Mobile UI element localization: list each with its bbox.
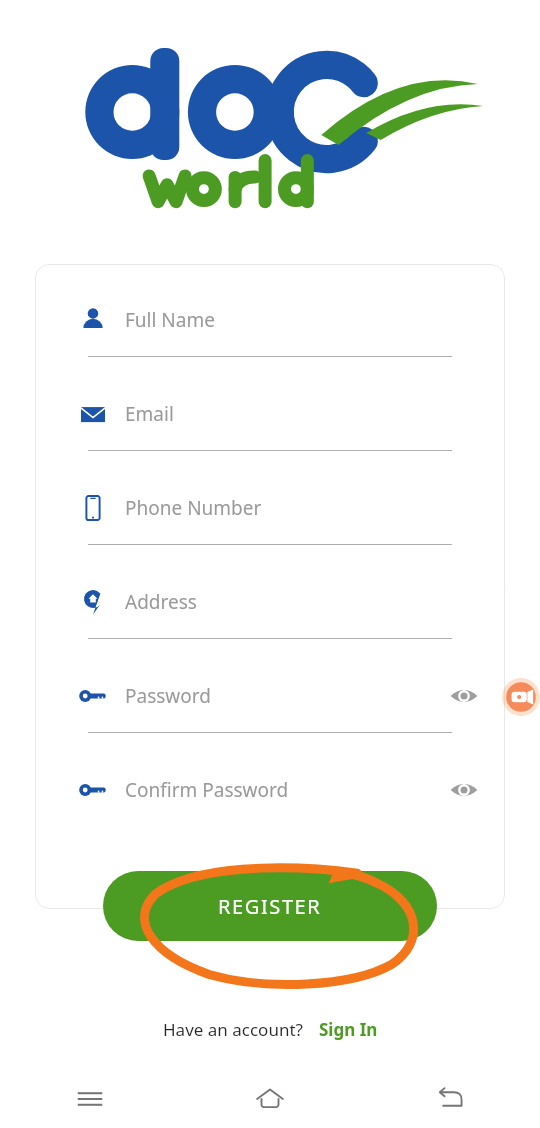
button[interactable]: Sign In xyxy=(319,1018,378,1041)
button[interactable]: Phone Number xyxy=(35,488,505,528)
staticText: REGISTER xyxy=(218,893,322,920)
staticText: Phone Number xyxy=(125,495,262,521)
button[interactable]: Confirm Password xyxy=(35,770,505,810)
staticText: Email xyxy=(125,401,174,427)
staticText: Address xyxy=(125,589,197,615)
button[interactable]: Full Name xyxy=(35,300,505,340)
button[interactable]: Recent apps xyxy=(58,1074,122,1124)
button[interactable]: REGISTER xyxy=(103,871,437,941)
button[interactable]: Password xyxy=(35,676,505,716)
staticText: Have an account? xyxy=(163,1018,303,1041)
button[interactable]: Video call xyxy=(502,669,540,725)
button[interactable]: Show password xyxy=(443,770,485,810)
staticText: Confirm Password xyxy=(125,777,289,803)
staticText: Password xyxy=(125,683,211,709)
button[interactable]: Address xyxy=(35,582,505,622)
button[interactable]: Show password xyxy=(443,676,485,716)
staticText: Sign In xyxy=(319,1018,378,1041)
staticText: Full Name xyxy=(125,307,215,333)
button[interactable]: Email xyxy=(35,394,505,434)
button[interactable]: Home xyxy=(238,1074,302,1124)
button[interactable]: Back xyxy=(418,1074,482,1124)
